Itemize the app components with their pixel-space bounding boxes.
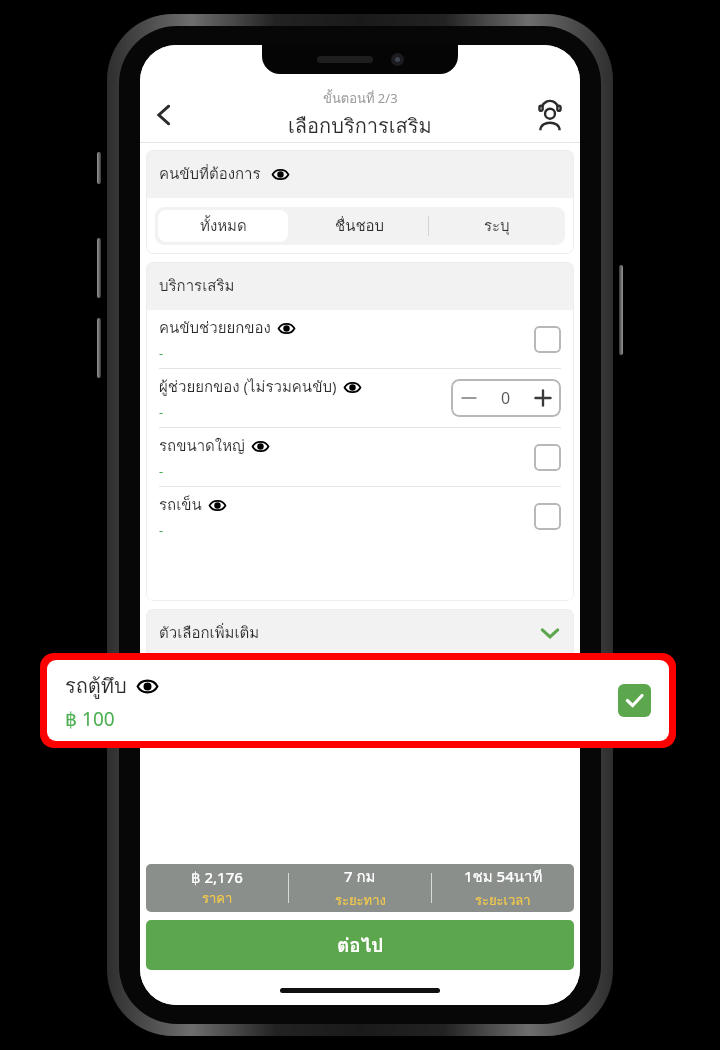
staticText: รถเข็น	[159, 493, 202, 517]
staticText: คนขับช่วยยกของ	[159, 316, 271, 340]
staticText: รถขนาดใหญ่	[159, 434, 245, 458]
staticText: เลือกบริการเสริม	[288, 110, 432, 142]
button[interactable]: ชื่นชอบ	[291, 207, 428, 245]
staticText: รถตู้ทึบ	[65, 670, 127, 702]
button[interactable]: รถตู้ทึบ	[47, 660, 669, 741]
button[interactable]: ตัวเลือกเพิ่มเติม	[146, 609, 574, 657]
staticText: ระบุ	[484, 214, 510, 238]
button[interactable]: Increase	[524, 379, 561, 417]
staticText: ทั้งหมด	[200, 214, 247, 238]
button[interactable]: Support	[528, 93, 572, 137]
staticText: ตัวเลือกเพิ่มเติม	[159, 621, 539, 645]
staticText: ราคา	[202, 888, 233, 909]
button[interactable]: ฿ 2,176	[146, 867, 288, 909]
button[interactable]: Select option	[534, 444, 561, 471]
staticText: 1ชม 54นาที	[464, 865, 543, 889]
button[interactable]: รถขนาดใหญ่	[146, 428, 574, 486]
button[interactable]: 7 กม	[289, 865, 431, 911]
staticText: ฿ 2,176	[191, 867, 243, 887]
staticText: ระยะเวลา	[475, 890, 531, 911]
button[interactable]: Decrease	[451, 379, 487, 417]
staticText: ฿ 100	[65, 706, 115, 732]
staticText: ต่อไป	[337, 930, 384, 960]
button[interactable]: ทั้งหมด	[158, 210, 288, 242]
staticText: -	[159, 403, 164, 421]
button[interactable]: 1ชม 54นาที	[432, 865, 574, 911]
staticText: ขั้นตอนที่ 2/3	[323, 88, 398, 109]
staticText: ระยะทาง	[335, 890, 386, 911]
staticText: -	[159, 344, 164, 362]
button[interactable]: คนขับช่วยยกของ	[146, 310, 574, 368]
staticText: 7 กม	[344, 865, 376, 889]
button[interactable]: Select option	[534, 326, 561, 353]
staticText: คนขับที่ต้องการ	[159, 162, 261, 186]
staticText: ผู้ช่วยยกของ (ไม่รวมคนขับ)	[159, 375, 337, 399]
staticText: 0	[501, 387, 511, 409]
staticText: บริการเสริม	[159, 274, 235, 298]
button[interactable]: Selected	[618, 684, 651, 717]
button[interactable]: ต่อไป	[146, 920, 574, 970]
button[interactable]: รถเข็น	[146, 487, 574, 545]
staticText: -	[159, 462, 164, 480]
button[interactable]: Select option	[534, 503, 561, 530]
staticText: ชื่นชอบ	[335, 214, 385, 238]
button[interactable]: ผู้ช่วยยกของ (ไม่รวมคนขับ)	[146, 369, 574, 427]
button[interactable]: ระบุ	[428, 207, 565, 245]
staticText: -	[159, 521, 164, 539]
button[interactable]: Back	[140, 91, 188, 139]
